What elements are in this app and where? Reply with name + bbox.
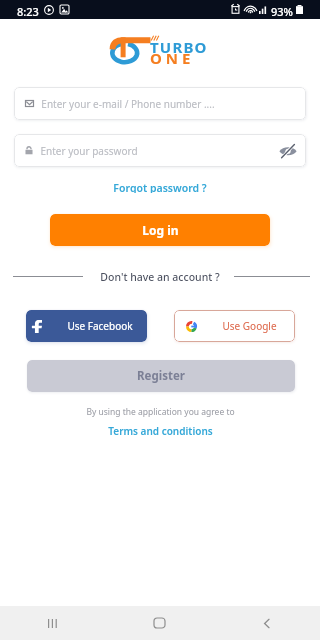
staticText: Use Facebook bbox=[67, 319, 133, 333]
button[interactable]: Use Facebook bbox=[26, 310, 147, 342]
button[interactable]: Use Google bbox=[174, 310, 295, 342]
staticText: 8:23 bbox=[17, 4, 39, 19]
staticText: Use Google bbox=[222, 319, 277, 333]
staticText: TURBO bbox=[150, 37, 208, 57]
button[interactable]: Back bbox=[213, 606, 320, 640]
staticText: Terms and conditions bbox=[108, 424, 213, 437]
button[interactable]: Register bbox=[27, 360, 295, 392]
button[interactable]: Enter your password bbox=[14, 134, 306, 167]
staticText: Forgot password ? bbox=[113, 181, 207, 193]
button[interactable]: Recent apps bbox=[0, 606, 106, 640]
staticText: By using the application you agree to bbox=[86, 406, 235, 418]
button[interactable]: Enter your e-mail / Phone number .... bbox=[14, 87, 306, 120]
staticText: ONE bbox=[150, 48, 195, 68]
staticText: Enter your password bbox=[40, 144, 138, 158]
staticText: Log in bbox=[142, 222, 179, 238]
staticText: Don't have an account ? bbox=[100, 270, 220, 284]
button[interactable]: Show password bbox=[271, 134, 304, 167]
staticText: Enter your e-mail / Phone number .... bbox=[41, 97, 215, 111]
button[interactable]: Log in bbox=[50, 214, 270, 246]
button[interactable]: Forgot password ? bbox=[107, 179, 213, 195]
staticText: Register bbox=[137, 368, 185, 384]
button[interactable]: Terms and conditions bbox=[102, 423, 219, 438]
staticText: 93% bbox=[271, 4, 293, 19]
button[interactable]: Home bbox=[106, 606, 213, 640]
